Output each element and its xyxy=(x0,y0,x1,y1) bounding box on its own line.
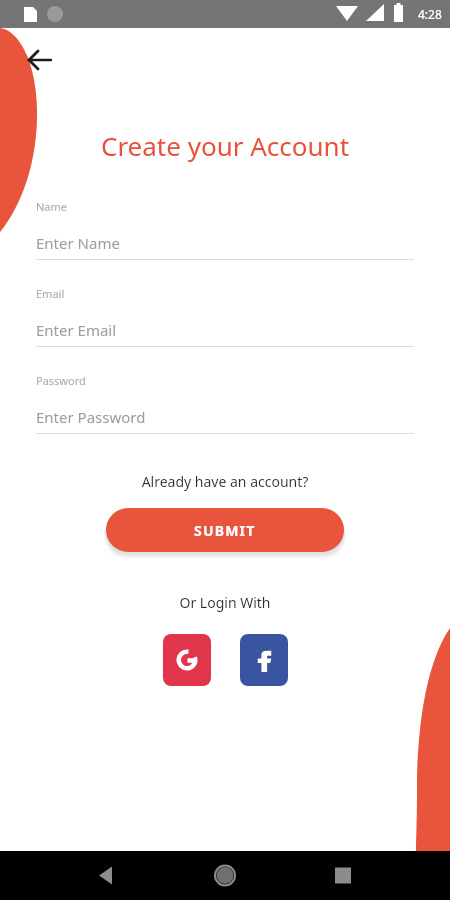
staticText: 4:28 xyxy=(418,6,442,22)
button[interactable]: Back xyxy=(20,40,60,80)
staticText: Enter Password xyxy=(36,407,146,427)
button[interactable]: Sign in with Facebook xyxy=(240,634,288,686)
staticText: Create your Account xyxy=(0,128,450,163)
staticText: Enter Name xyxy=(36,233,120,253)
button[interactable]: Email xyxy=(36,286,414,347)
staticText: Email xyxy=(36,286,65,301)
staticText: Or Login With xyxy=(0,593,450,612)
button[interactable]: Password xyxy=(36,373,414,434)
button[interactable]: Name xyxy=(36,199,414,260)
staticText: Name xyxy=(36,199,68,214)
staticText: Enter Email xyxy=(36,320,117,340)
staticText: SUBMIT xyxy=(194,521,256,540)
button[interactable]: Sign in with Google xyxy=(163,634,211,686)
staticText: Password xyxy=(36,373,86,388)
button[interactable]: Already have an account? xyxy=(0,472,450,491)
button[interactable]: SUBMIT xyxy=(106,508,344,552)
